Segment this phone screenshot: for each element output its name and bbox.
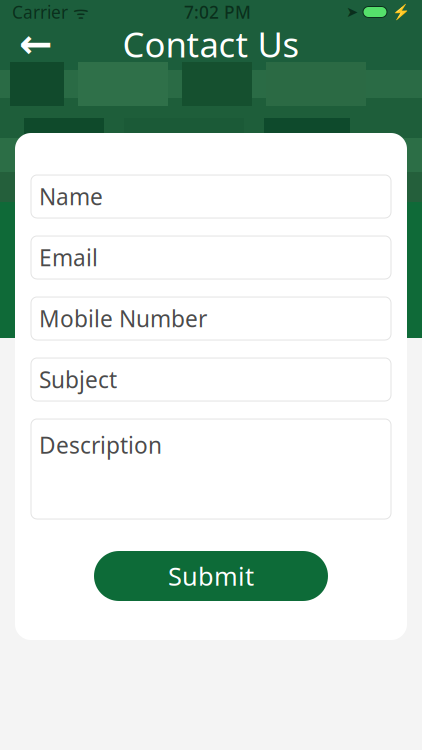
staticText: Name (39, 181, 103, 211)
staticText: ⚡ (392, 4, 410, 20)
button[interactable]: Back (14, 22, 58, 66)
staticText: 7:02 PM (184, 0, 251, 23)
staticText: ← (19, 21, 53, 67)
staticText: Contact Us (122, 21, 299, 67)
staticText: ➤ (346, 4, 358, 20)
staticText: Submit (168, 559, 254, 593)
staticText: Carrier ᯤ (12, 0, 89, 23)
staticText: Email (39, 242, 98, 272)
staticText: Subject (39, 364, 117, 394)
staticText: Mobile Number (39, 303, 207, 333)
button[interactable]: Submit (94, 551, 328, 601)
staticText: Description (39, 430, 162, 460)
